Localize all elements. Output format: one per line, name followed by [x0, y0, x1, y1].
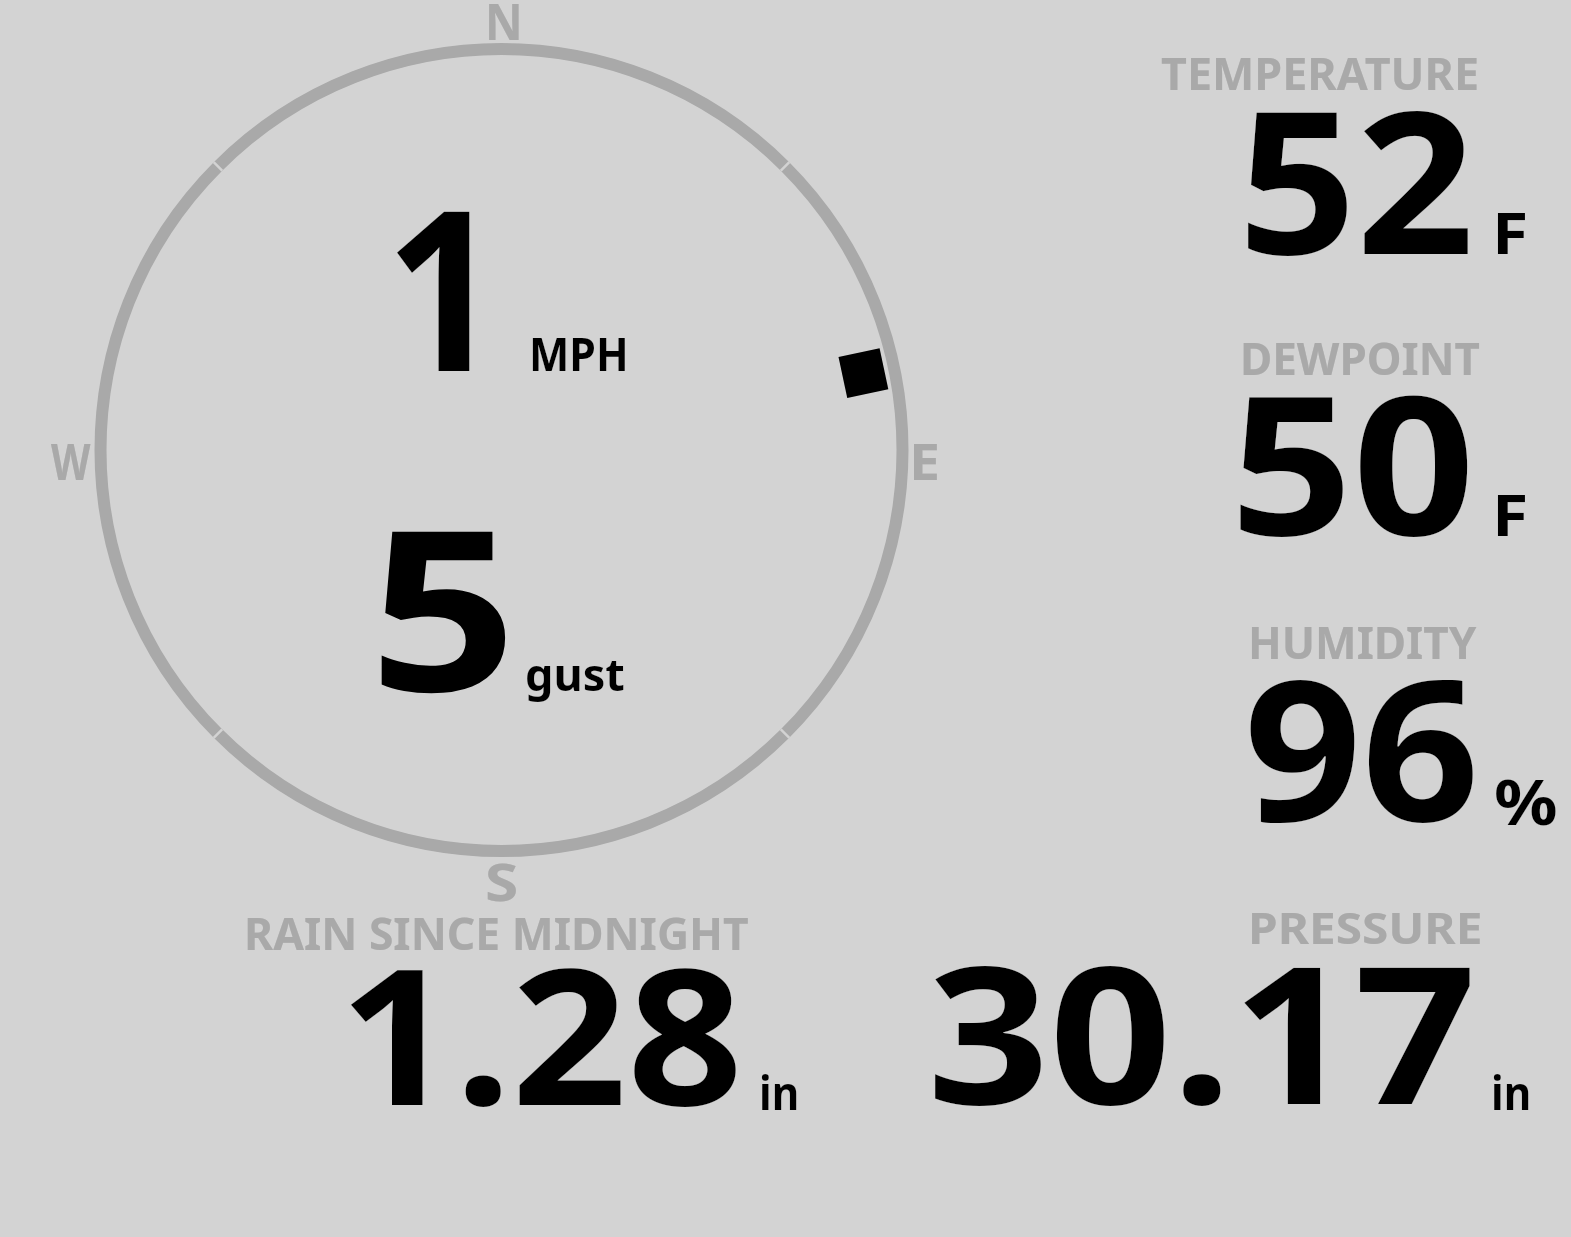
button[interactable]: Humidity 96 percent	[1150, 619, 1550, 829]
staticText: F	[1492, 474, 1528, 553]
button[interactable]: Rain since midnight 1.28 inches	[240, 910, 810, 1115]
staticText: PRESSURE	[1248, 898, 1483, 957]
button[interactable]: Pressure 30.17 inches	[920, 910, 1535, 1115]
staticText: W	[51, 425, 91, 494]
staticText: 1.28	[339, 903, 743, 1160]
staticText: HUMIDITY	[1248, 611, 1476, 672]
staticText: RAIN SINCE MIDNIGHT	[244, 903, 749, 963]
staticText: S	[485, 845, 519, 916]
staticText: E	[909, 427, 940, 495]
staticText: N	[485, 0, 523, 54]
button[interactable]: Wind speed 1 MPH, gust 5, from the east	[99, 48, 904, 853]
staticText: in	[1491, 1061, 1531, 1124]
staticText: %	[1494, 758, 1558, 844]
staticText: in	[759, 1061, 799, 1124]
staticText: F	[1492, 192, 1528, 271]
staticText: MPH	[529, 322, 629, 385]
staticText: 5	[369, 453, 517, 757]
button[interactable]: Dewpoint 50 degrees Fahrenheit	[1150, 334, 1550, 544]
staticText: TEMPERATURE	[1161, 43, 1479, 103]
staticText: 52	[1238, 43, 1475, 311]
staticText: 30.17	[927, 900, 1477, 1160]
staticText: 50	[1230, 329, 1475, 592]
staticText: 1	[385, 134, 502, 436]
staticText: 96	[1244, 611, 1480, 878]
staticText: gust	[525, 643, 625, 704]
staticText: DEWPOINT	[1240, 328, 1480, 388]
button[interactable]: Temperature 52 degrees Fahrenheit	[1150, 50, 1550, 260]
